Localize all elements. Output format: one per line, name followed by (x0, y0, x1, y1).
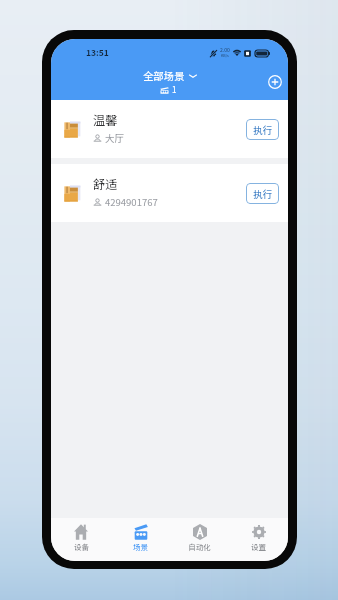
staticText: 设备 (74, 541, 89, 552)
staticText: 场景 (133, 541, 148, 552)
staticText: KB/s (221, 53, 229, 58)
button[interactable]: 设置 (229, 518, 288, 561)
staticText: 自动化 (188, 541, 211, 552)
staticText: 13:51 (86, 46, 109, 58)
staticText: 全部场景 (143, 68, 185, 83)
button[interactable]: Add scene (265, 72, 285, 92)
staticText: 2.00 (220, 46, 230, 53)
staticText: 大厅 (105, 131, 125, 145)
staticText: 执行 (253, 123, 273, 137)
button[interactable]: 温馨 (51, 100, 288, 158)
staticText: 设置 (251, 541, 266, 552)
staticText: 4294901767 (105, 195, 158, 209)
staticText: 舒适 (93, 175, 118, 193)
button[interactable]: 执行 (246, 183, 279, 204)
staticText: 温馨 (93, 111, 118, 129)
button[interactable]: 舒适 (51, 164, 288, 222)
button[interactable]: 全部场景 (143, 68, 197, 83)
staticText: 1 (172, 84, 177, 96)
button[interactable]: 自动化 (170, 518, 229, 561)
staticText: 执行 (253, 187, 273, 201)
button[interactable]: 执行 (246, 119, 279, 140)
button[interactable]: 场景 (111, 518, 170, 561)
button[interactable]: 设备 (51, 518, 111, 561)
